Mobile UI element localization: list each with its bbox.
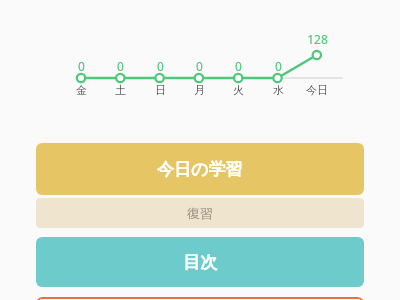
staticText: 0: [196, 58, 203, 74]
staticText: 金: [76, 83, 87, 97]
staticText: 128: [307, 31, 328, 47]
staticText: 水: [273, 83, 284, 97]
button[interactable]: 今日の学習: [36, 143, 364, 195]
button[interactable]: [36, 297, 364, 300]
staticText: 0: [157, 58, 164, 74]
button[interactable]: 目次: [36, 237, 364, 287]
staticText: 火: [233, 83, 244, 97]
staticText: 0: [275, 58, 282, 74]
staticText: 今日の学習: [157, 159, 243, 180]
staticText: 土: [115, 83, 126, 97]
staticText: 月: [194, 83, 205, 97]
staticText: 目次: [183, 252, 217, 273]
staticText: 0: [235, 58, 242, 74]
staticText: 今日: [306, 83, 328, 97]
staticText: 0: [117, 58, 124, 74]
staticText: 0: [78, 58, 85, 74]
button[interactable]: 復習: [36, 198, 364, 228]
staticText: 日: [155, 83, 166, 97]
staticText: 復習: [187, 205, 213, 221]
